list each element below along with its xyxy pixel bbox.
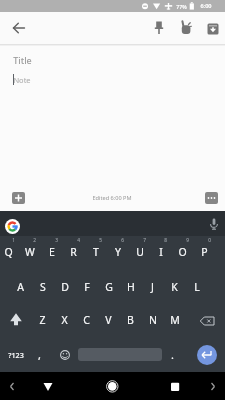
button[interactable]: W — [19, 239, 40, 265]
staticText: T — [93, 245, 99, 259]
button[interactable]: M — [164, 305, 185, 335]
staticText: E — [49, 245, 55, 259]
staticText: C — [83, 313, 90, 327]
staticText: F — [84, 280, 90, 294]
staticText: . — [171, 347, 174, 362]
staticText: O — [178, 245, 187, 259]
button[interactable]: U — [129, 239, 150, 265]
button[interactable]: Y — [107, 239, 128, 265]
button[interactable]: K — [164, 272, 185, 302]
button[interactable] — [6, 380, 18, 393]
button[interactable]: I — [150, 239, 171, 265]
staticText: 2 — [33, 237, 36, 244]
staticText: Edited 6:00 PM — [92, 194, 132, 202]
staticText: 6:00 — [200, 2, 212, 10]
button[interactable]: D — [54, 272, 75, 302]
staticText: G — [105, 280, 113, 294]
button[interactable] — [176, 18, 196, 38]
staticText: 3 — [55, 237, 58, 244]
staticText: Note — [13, 75, 31, 85]
staticText: 7 — [143, 237, 146, 244]
button[interactable]: H — [120, 272, 141, 302]
button[interactable] — [149, 18, 169, 38]
button[interactable]: X — [54, 305, 75, 335]
button[interactable]: R — [63, 239, 84, 265]
button[interactable]: P — [194, 239, 215, 265]
button[interactable] — [38, 376, 58, 396]
staticText: N — [149, 313, 157, 327]
button[interactable]: T — [85, 239, 106, 265]
staticText: J — [151, 280, 154, 294]
staticText: V — [105, 313, 112, 327]
button[interactable] — [8, 17, 30, 39]
staticText: Q — [4, 245, 13, 259]
button[interactable] — [203, 19, 223, 39]
staticText: X — [61, 313, 68, 327]
button[interactable] — [194, 308, 220, 332]
button[interactable] — [205, 192, 218, 204]
button[interactable] — [102, 376, 122, 396]
button[interactable] — [12, 192, 25, 204]
staticText: D — [61, 280, 69, 294]
staticText: U — [136, 245, 144, 259]
staticText: M — [170, 313, 180, 327]
button[interactable]: J — [142, 272, 163, 302]
button[interactable]: G — [98, 272, 119, 302]
staticText: Title — [13, 54, 32, 66]
staticText: 5 — [99, 237, 102, 244]
staticText: I — [159, 245, 163, 259]
staticText: W — [25, 245, 35, 259]
staticText: ?123 — [8, 350, 24, 360]
button[interactable]: C — [76, 305, 97, 335]
button[interactable]: A — [10, 272, 31, 302]
staticText: S — [40, 280, 46, 294]
staticText: 4 — [77, 237, 80, 244]
staticText: P — [201, 245, 208, 259]
button[interactable]: F — [76, 272, 97, 302]
button[interactable]: L — [186, 272, 207, 302]
button[interactable]: , — [31, 339, 47, 369]
staticText: 9 — [186, 237, 189, 244]
staticText: 0 — [208, 237, 211, 244]
button[interactable] — [165, 376, 185, 396]
staticText: A — [17, 280, 24, 294]
button[interactable]: E — [41, 239, 62, 265]
button[interactable] — [197, 345, 217, 365]
button[interactable]: S — [32, 272, 53, 302]
button[interactable] — [55, 345, 75, 365]
staticText: 1 — [12, 237, 15, 244]
button[interactable]: . — [164, 339, 180, 369]
button[interactable] — [207, 380, 219, 393]
staticText: K — [171, 280, 178, 294]
staticText: Y — [115, 245, 121, 259]
staticText: B — [127, 313, 134, 327]
staticText: L — [194, 280, 200, 294]
staticText: 6 — [121, 237, 124, 244]
staticText: 8 — [164, 237, 167, 244]
button[interactable]: B — [120, 305, 141, 335]
staticText: Z — [39, 313, 46, 327]
button[interactable] — [206, 216, 222, 232]
button[interactable]: ?123 — [1, 340, 31, 370]
button[interactable] — [4, 308, 28, 332]
button[interactable]: O — [172, 239, 193, 265]
button[interactable]: V — [98, 305, 119, 335]
staticText: H — [127, 280, 135, 294]
button[interactable]: N — [142, 305, 163, 335]
button[interactable] — [5, 219, 20, 234]
staticText: R — [70, 245, 77, 259]
button[interactable]: Z — [32, 305, 53, 335]
button[interactable]: Q — [0, 239, 19, 265]
staticText: , — [38, 347, 41, 362]
staticText: 77% — [176, 3, 187, 10]
